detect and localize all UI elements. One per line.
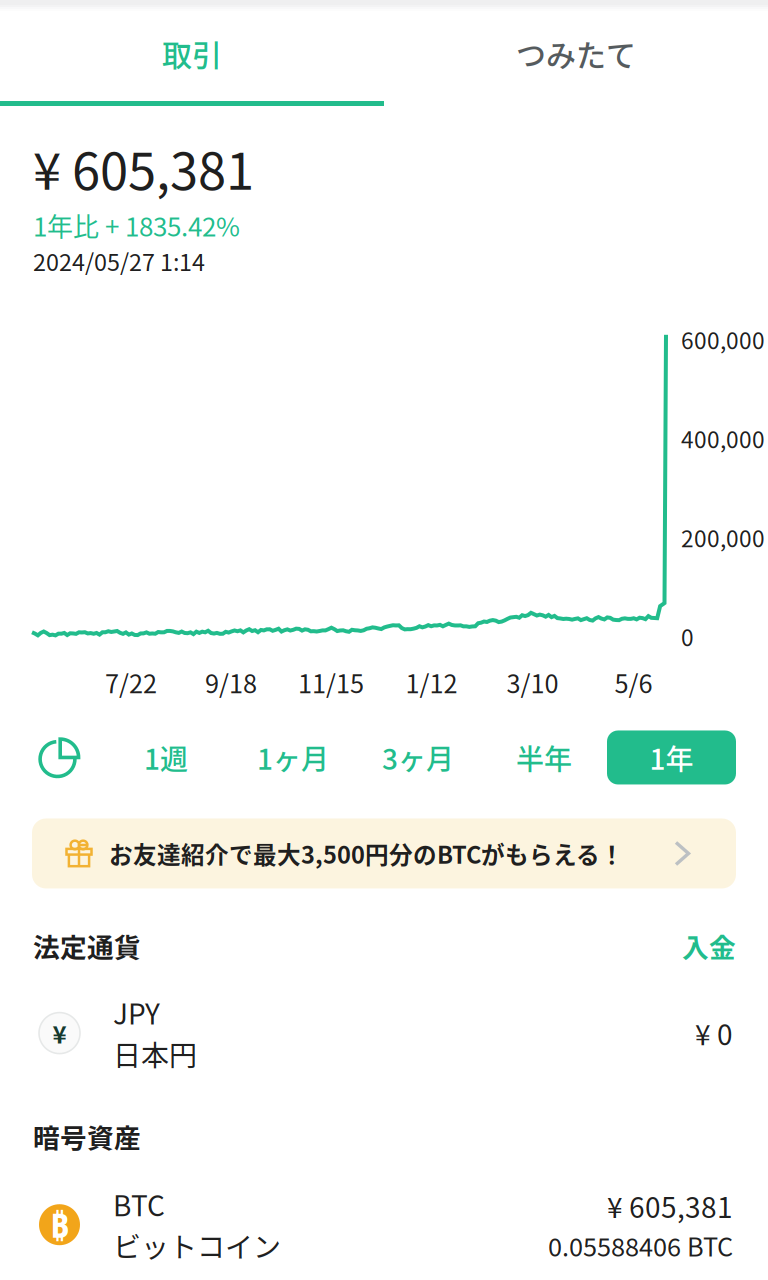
- staticText: 取引: [162, 32, 222, 75]
- button[interactable]: 1ヶ月: [243, 730, 343, 784]
- button[interactable]: Portfolio breakdown: [29, 730, 89, 784]
- button[interactable]: 入金: [682, 926, 736, 965]
- staticText: お友達紹介で最大3,500円分のBTCがもらえる！: [109, 836, 624, 871]
- staticText: ₿: [50, 1202, 69, 1247]
- staticText: BTC: [113, 1184, 165, 1224]
- button[interactable]: 1週: [89, 730, 243, 784]
- staticText: 半年: [516, 737, 572, 778]
- staticText: ¥ 605,381: [607, 1186, 733, 1226]
- staticText: 0.05588406 BTC: [548, 1227, 733, 1264]
- staticText: 暗号資産: [33, 1117, 141, 1156]
- button[interactable]: 半年: [493, 730, 595, 784]
- staticText: 2024/05/27 1:14: [33, 244, 205, 278]
- staticText: 入金: [682, 926, 736, 965]
- staticText: 1ヶ月: [257, 737, 329, 778]
- button[interactable]: 3ヶ月: [343, 730, 493, 784]
- staticText: ビットコイン: [113, 1225, 281, 1266]
- button[interactable]: 1年: [607, 730, 736, 784]
- staticText: ¥: [52, 1016, 66, 1050]
- staticText: 1年: [649, 737, 693, 778]
- staticText: 9/18: [205, 664, 257, 700]
- staticText: 3ヶ月: [382, 737, 454, 778]
- button[interactable]: ₿: [0, 1184, 768, 1266]
- staticText: 1年比 + 1835.42%: [33, 206, 240, 244]
- staticText: ¥ 605,381: [33, 131, 254, 204]
- staticText: 11/15: [298, 664, 364, 700]
- staticText: 5/6: [614, 664, 652, 700]
- button[interactable]: 取引: [0, 11, 384, 106]
- staticText: 3/10: [506, 664, 558, 700]
- staticText: つみたて: [516, 32, 636, 75]
- staticText: 1/12: [405, 664, 457, 700]
- staticText: 法定通貨: [33, 926, 141, 965]
- button[interactable]: お友達紹介で最大3,500円分のBTCがもらえる！: [32, 818, 736, 888]
- staticText: ¥ 0: [695, 1013, 733, 1053]
- staticText: 日本円: [113, 1034, 197, 1074]
- button[interactable]: つみたて: [384, 11, 768, 106]
- staticText: JPY: [113, 992, 160, 1033]
- staticText: 200,000: [681, 521, 765, 554]
- staticText: 1週: [144, 737, 188, 778]
- staticText: 600,000: [681, 323, 765, 356]
- staticText: 0: [681, 620, 694, 653]
- staticText: 7/22: [105, 664, 157, 700]
- staticText: 400,000: [681, 422, 765, 455]
- button[interactable]: ¥: [0, 992, 768, 1074]
